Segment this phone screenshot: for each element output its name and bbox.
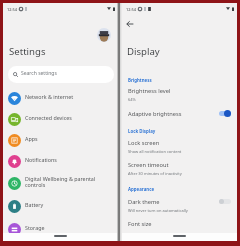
button[interactable]: Digital Wellbeing & parental controls — [3, 173, 118, 194]
staticText: 12:54 — [7, 7, 17, 12]
button[interactable]: Apps — [3, 130, 118, 151]
button[interactable]: Search settings — [8, 66, 114, 83]
staticText: 64% — [128, 97, 136, 102]
button[interactable]: Screen timeout — [122, 160, 237, 180]
button[interactable]: Network & internet — [3, 88, 118, 109]
staticText: Connected devices — [25, 114, 72, 121]
staticText: Digital Wellbeing & parental controls — [25, 175, 96, 188]
button[interactable]: Adaptive brightness — [122, 109, 237, 121]
button[interactable]: Account — [97, 28, 111, 42]
staticText: Lock Display — [128, 128, 156, 134]
staticText: Screen timeout — [128, 161, 169, 169]
staticText: Appearance — [128, 186, 155, 192]
button[interactable]: Connected devices — [3, 109, 118, 130]
staticText: Battery — [25, 201, 44, 208]
staticText: Storage — [25, 224, 45, 231]
button[interactable]: Back — [123, 17, 137, 31]
staticText: Brightness — [128, 77, 152, 83]
button[interactable]: Battery — [3, 196, 118, 217]
staticText: Will never turn on automatically — [128, 208, 188, 213]
staticText: Font size — [128, 220, 152, 228]
button[interactable]: Font size — [122, 219, 237, 231]
staticText: Adaptive brightness — [128, 110, 182, 118]
staticText: Show all notification content — [128, 149, 182, 154]
staticText: Settings — [9, 45, 46, 58]
button[interactable]: Brightness level — [122, 86, 237, 106]
button[interactable]: Dark theme — [122, 197, 237, 217]
staticText: Network & internet — [25, 93, 74, 100]
staticText: 12:54 — [126, 7, 136, 12]
staticText: Display — [127, 45, 160, 58]
button[interactable]: Lock screen — [122, 138, 237, 158]
button[interactable]: Storage — [3, 219, 118, 240]
staticText: Search settings — [21, 70, 57, 77]
staticText: After 30 minutes of inactivity — [128, 171, 182, 176]
staticText: Lock screen — [128, 139, 160, 147]
button[interactable]: Notifications — [3, 151, 118, 172]
staticText: Dark theme — [128, 198, 160, 206]
staticText: Notifications — [25, 156, 57, 163]
staticText: Apps — [25, 135, 38, 142]
staticText: Brightness level — [128, 87, 171, 95]
